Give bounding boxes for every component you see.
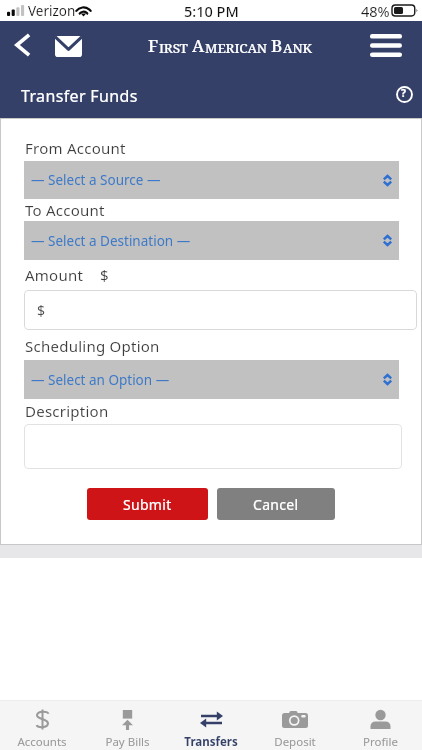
button[interactable]: Back bbox=[0, 21, 44, 73]
button[interactable]: Pay Bills bbox=[85, 701, 169, 750]
staticText: F bbox=[148, 34, 159, 57]
staticText: ? bbox=[401, 86, 407, 100]
staticText: Cancel bbox=[253, 495, 299, 514]
button[interactable]: Transfers bbox=[169, 701, 253, 750]
button[interactable]: — Select a Destination — bbox=[24, 221, 399, 260]
button[interactable]: — Select a Source — bbox=[24, 161, 399, 199]
staticText: $ bbox=[37, 301, 46, 320]
button[interactable]: Cancel bbox=[217, 488, 335, 520]
staticText: MERICAN bbox=[205, 39, 267, 57]
button[interactable]: Submit bbox=[87, 488, 208, 520]
button[interactable]: $ bbox=[24, 290, 417, 330]
staticText: A bbox=[192, 34, 205, 57]
button[interactable]: Accounts bbox=[0, 701, 84, 750]
staticText: Transfers bbox=[184, 734, 238, 750]
staticText: Transfer Funds bbox=[21, 85, 138, 107]
staticText: Scheduling Option bbox=[25, 336, 160, 356]
staticText: To Account bbox=[25, 200, 105, 220]
staticText: $ bbox=[100, 265, 109, 285]
staticText: Pay Bills bbox=[105, 734, 150, 750]
button[interactable]: Deposit bbox=[253, 701, 337, 750]
staticText: IRST bbox=[159, 39, 188, 57]
staticText: From Account bbox=[25, 138, 126, 158]
staticText: ANK bbox=[283, 39, 312, 57]
staticText: 48% bbox=[361, 1, 390, 21]
staticText: — Select a Destination — bbox=[31, 232, 191, 250]
button[interactable]: Help bbox=[384, 76, 422, 116]
button[interactable]: Messages bbox=[46, 21, 90, 73]
staticText: B bbox=[271, 34, 283, 57]
staticText: Deposit bbox=[274, 734, 316, 750]
staticText: Description bbox=[25, 401, 109, 421]
button[interactable]: Menu bbox=[364, 21, 408, 73]
staticText: Profile bbox=[363, 734, 398, 750]
staticText: Verizon bbox=[28, 2, 76, 20]
button[interactable]: Profile bbox=[338, 701, 422, 750]
staticText: Accounts bbox=[17, 734, 67, 750]
staticText: — Select a Source — bbox=[31, 171, 161, 189]
staticText: Submit bbox=[123, 495, 172, 514]
button[interactable] bbox=[24, 424, 402, 469]
staticText: 5:10 PM bbox=[184, 1, 239, 21]
button[interactable]: — Select an Option — bbox=[24, 360, 399, 399]
staticText: — Select an Option — bbox=[31, 371, 170, 389]
staticText: Amount bbox=[25, 265, 84, 285]
